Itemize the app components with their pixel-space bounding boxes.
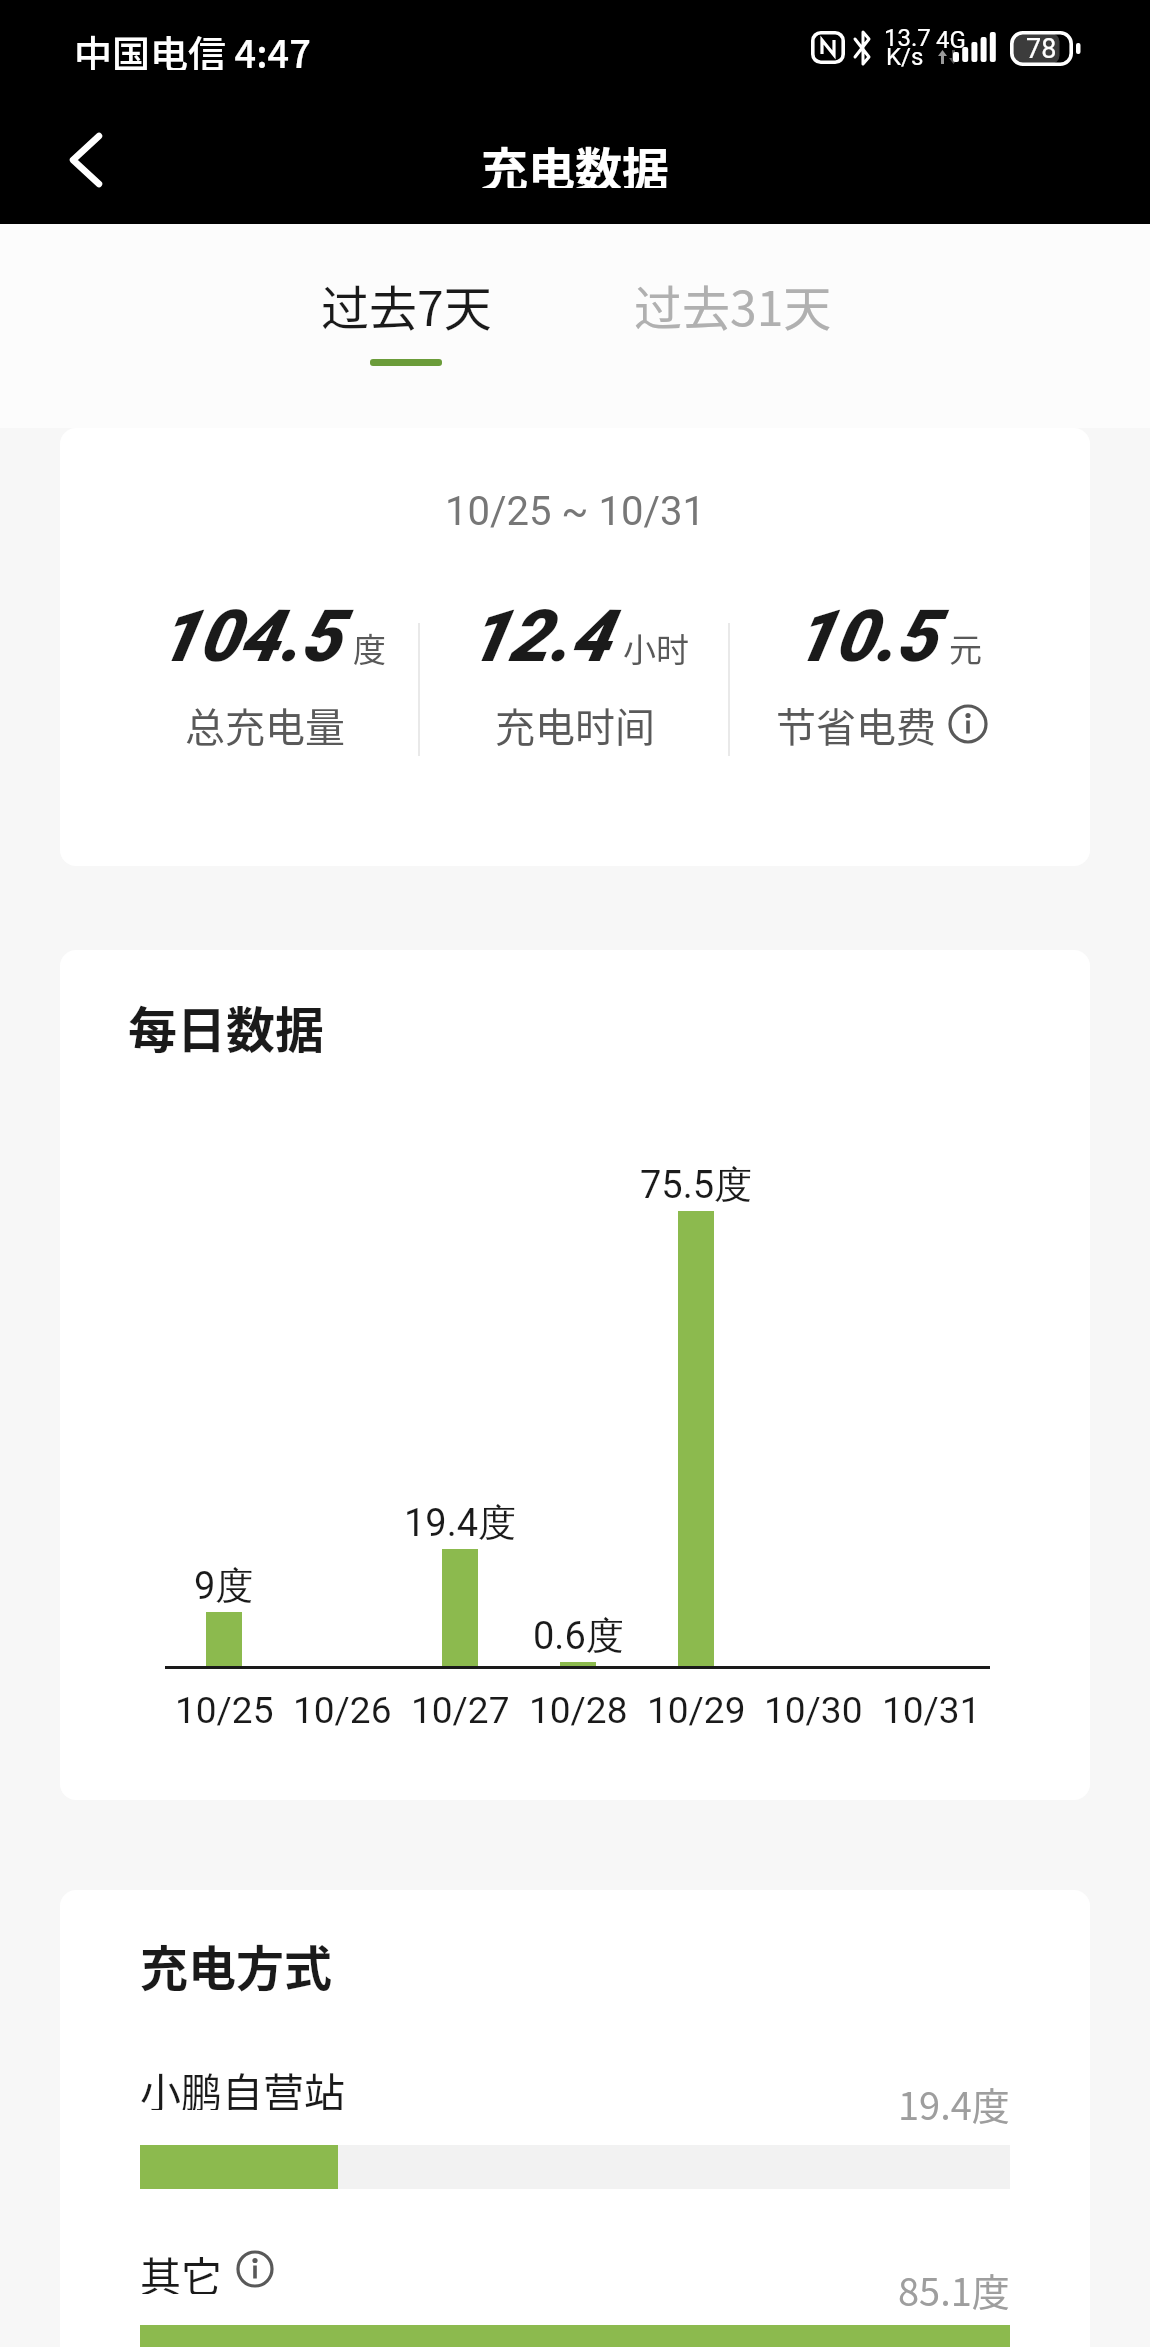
staticText: 75.5度 bbox=[640, 1161, 753, 1209]
button[interactable] bbox=[236, 2250, 274, 2288]
staticText: 充电方式 bbox=[140, 1930, 333, 2000]
staticText: 过去7天 bbox=[321, 270, 492, 340]
button[interactable]: 过去31天 bbox=[608, 250, 858, 360]
staticText: 10/30 bbox=[764, 1689, 863, 1732]
staticText: 其它 bbox=[140, 2244, 222, 2294]
staticText: 10/25 ~ 10/31 bbox=[445, 488, 705, 535]
staticText: 10/28 bbox=[529, 1689, 628, 1732]
staticText: 19.4度 bbox=[898, 2076, 1010, 2126]
staticText: 每日数据 bbox=[128, 991, 325, 1062]
staticText: 0.6度 bbox=[533, 1612, 624, 1660]
staticText: 10/29 bbox=[647, 1689, 746, 1732]
staticText: 85.1度 bbox=[898, 2262, 1010, 2312]
staticText: K/s bbox=[886, 43, 924, 71]
staticText: 元 bbox=[949, 624, 982, 672]
staticText: 10/25 bbox=[175, 1689, 274, 1732]
staticText: 78 bbox=[1026, 33, 1057, 65]
staticText: 9度 bbox=[194, 1562, 254, 1610]
staticText: 度 bbox=[353, 624, 386, 672]
staticText: 13.7 bbox=[884, 24, 931, 52]
staticText: 总充电量 bbox=[185, 696, 345, 752]
staticText: 过去31天 bbox=[634, 270, 832, 340]
staticText: 10/31 bbox=[882, 1689, 981, 1732]
staticText: 充电数据 bbox=[481, 132, 669, 188]
staticText: 充电时间 bbox=[495, 696, 655, 752]
staticText: 中国电信 4:47 bbox=[74, 24, 311, 70]
staticText: 19.4度 bbox=[404, 1499, 517, 1547]
staticText: 4G bbox=[936, 26, 966, 54]
staticText: 小时 bbox=[623, 624, 689, 672]
staticText: 10/27 bbox=[411, 1689, 510, 1732]
staticText: 12.4 bbox=[468, 594, 611, 678]
staticText: 小鹏自营站 bbox=[140, 2060, 345, 2110]
staticText: 10.5 bbox=[794, 594, 937, 678]
button[interactable] bbox=[948, 704, 988, 744]
button[interactable] bbox=[50, 124, 122, 196]
button[interactable]: 过去7天 bbox=[281, 250, 531, 360]
staticText: 104.5 bbox=[158, 594, 341, 678]
staticText: 10/26 bbox=[293, 1689, 392, 1732]
staticText: 节省电费 bbox=[776, 696, 936, 752]
